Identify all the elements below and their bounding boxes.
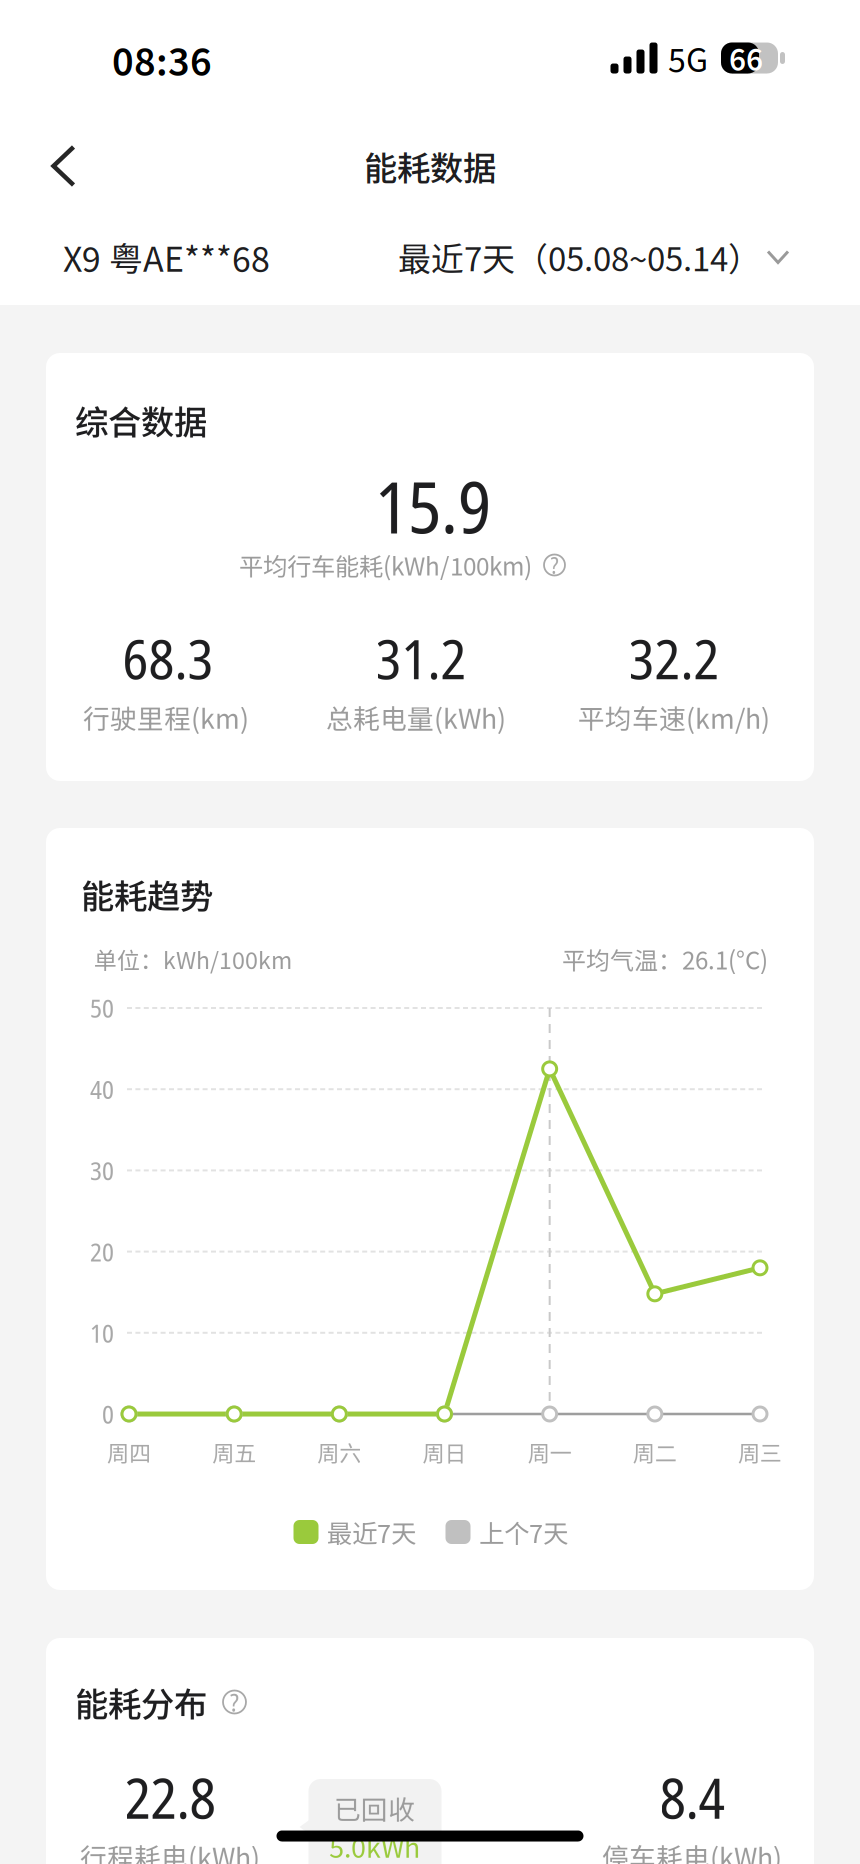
staticText: 08:36 xyxy=(112,32,212,86)
button[interactable]: Back xyxy=(18,120,110,212)
staticText: 周一 xyxy=(528,1436,572,1468)
staticText: 能耗分布 xyxy=(75,1678,207,1726)
staticText: X9 粤AE***68 xyxy=(63,232,270,282)
staticText: 周日 xyxy=(422,1436,466,1468)
staticText: 行程耗电(kWh) xyxy=(80,1837,260,1864)
staticText: 50 xyxy=(90,991,114,1025)
staticText: 40 xyxy=(90,1072,114,1106)
staticText: 最近7天 xyxy=(327,1514,416,1550)
staticText: 周四 xyxy=(107,1436,151,1468)
staticText: 总耗电量(kWh) xyxy=(326,698,506,736)
staticText: 15.9 xyxy=(375,458,491,554)
staticText: 已回收 xyxy=(334,1789,415,1827)
staticText: 周二 xyxy=(633,1436,677,1468)
staticText: 5G xyxy=(668,35,708,81)
button[interactable]: About average driving consumption xyxy=(540,550,569,579)
staticText: 行驶里程(km) xyxy=(83,698,249,736)
button[interactable]: 最近7天（05.08~05.14） xyxy=(390,211,800,303)
staticText: 能耗趋势 xyxy=(81,870,213,918)
staticText: 最近7天（05.08~05.14） xyxy=(398,233,761,281)
staticText: 平均车速(km/h) xyxy=(578,698,770,736)
staticText: 能耗数据 xyxy=(364,142,496,190)
staticText: 32.2 xyxy=(628,621,719,695)
staticText: 22.8 xyxy=(124,1759,215,1835)
staticText: ? xyxy=(230,1685,239,1719)
staticText: 5.0kWh xyxy=(329,1827,420,1864)
staticText: 周六 xyxy=(317,1436,361,1468)
staticText: 31.2 xyxy=(375,621,466,695)
staticText: 停车耗电(kWh) xyxy=(602,1837,782,1864)
staticText: 10 xyxy=(90,1315,114,1350)
staticText: 8.4 xyxy=(659,1759,724,1835)
staticText: ? xyxy=(550,549,558,581)
staticText: 66 xyxy=(729,37,763,79)
staticText: 周五 xyxy=(212,1436,256,1468)
staticText: 30 xyxy=(90,1153,114,1188)
staticText: 综合数据 xyxy=(75,396,207,444)
staticText: 68.3 xyxy=(122,621,213,695)
staticText: 平均行车能耗(kWh/100km) xyxy=(239,547,532,582)
staticText: 0 xyxy=(102,1397,114,1431)
button[interactable]: About energy distribution xyxy=(219,1686,250,1717)
staticText: 20 xyxy=(90,1234,114,1269)
staticText: 单位：kWh/100km xyxy=(94,942,292,976)
staticText: 平均气温：26.1(°C) xyxy=(562,942,768,976)
staticText: 上个7天 xyxy=(479,1514,568,1550)
staticText: 周三 xyxy=(738,1436,782,1468)
